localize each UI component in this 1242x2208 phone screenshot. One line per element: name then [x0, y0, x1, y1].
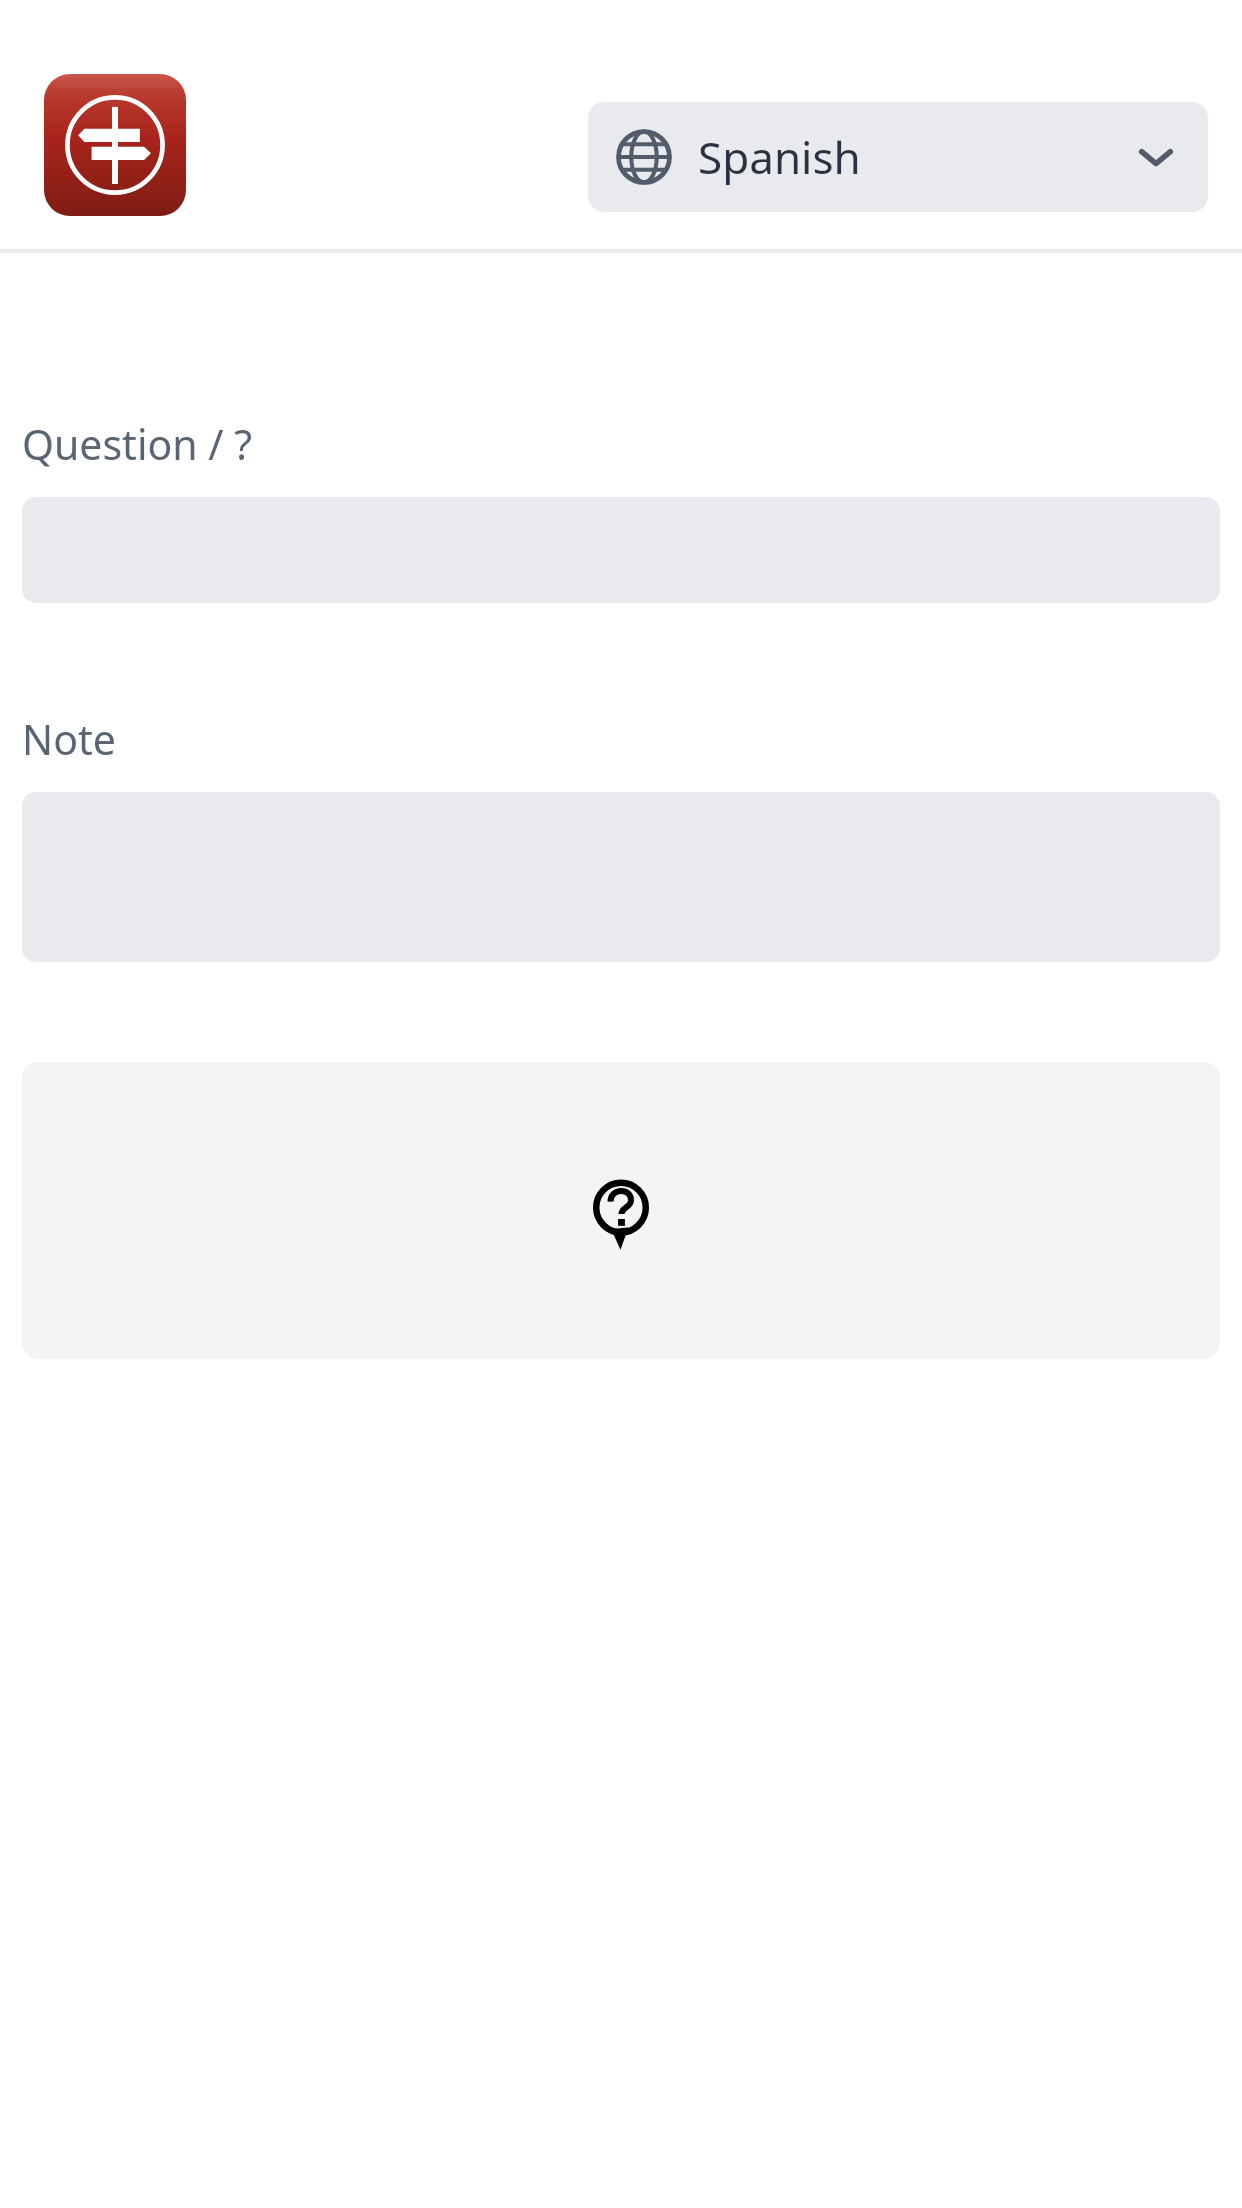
- button[interactable]: Help: [22, 1062, 1220, 1359]
- staticText: Note: [22, 711, 116, 767]
- button[interactable]: App icon: [44, 74, 186, 216]
- staticText: Spanish: [698, 127, 861, 187]
- button[interactable]: Spanish: [588, 102, 1208, 212]
- staticText: Question / ?: [22, 416, 253, 472]
- other: Expand language list: [1132, 133, 1180, 181]
